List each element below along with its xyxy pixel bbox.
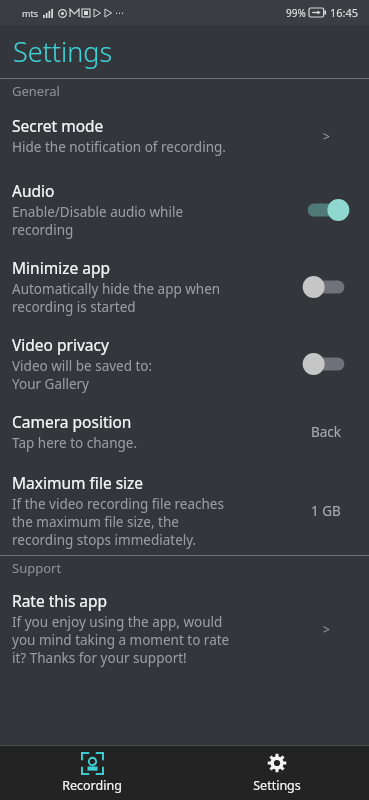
staticText: Rate this app: [12, 590, 108, 611]
button[interactable]: Settings: [184, 746, 369, 800]
staticText: Tap here to change.: [12, 434, 138, 452]
button[interactable]: Maximum file size: [0, 470, 369, 555]
staticText: Support: [12, 559, 62, 577]
staticText: Video privacy: [12, 334, 109, 355]
staticText: Secret mode: [12, 115, 104, 136]
button[interactable]: Toggle off: [303, 276, 349, 298]
staticText: 99%: [286, 6, 306, 20]
staticText: 16:45: [330, 5, 359, 20]
staticText: >: [323, 621, 330, 637]
staticText: Automatically hide the app when recordin…: [12, 280, 221, 316]
button[interactable]: Audio: [0, 174, 369, 251]
button[interactable]: Toggle off: [303, 353, 349, 375]
staticText: mts: [22, 7, 38, 19]
staticText: Enable/Disable audio while recording: [12, 203, 184, 239]
staticText: Maximum file size: [12, 472, 144, 493]
button[interactable]: Minimize app: [0, 251, 369, 328]
button[interactable]: Toggle on: [303, 199, 349, 221]
button[interactable]: Recording: [0, 746, 184, 800]
button[interactable]: Secret mode: [0, 103, 369, 174]
staticText: >: [323, 128, 330, 144]
staticText: Camera position: [12, 411, 132, 432]
staticText: Minimize app: [12, 257, 110, 278]
staticText: Settings: [253, 777, 301, 794]
staticText: If you enjoy using the app, would you mi…: [12, 613, 230, 667]
staticText: 1 GB: [311, 502, 341, 520]
button[interactable]: Rate this app: [0, 580, 369, 673]
staticText: Audio: [12, 180, 55, 201]
button[interactable]: Camera position: [0, 405, 369, 470]
staticText: Recording: [62, 777, 122, 794]
staticText: Settings: [13, 33, 113, 70]
button[interactable]: Video privacy: [0, 328, 369, 405]
staticText: Hide the notification of recording.: [12, 138, 226, 156]
staticText: ⋯: [115, 8, 124, 18]
staticText: If the video recording file reaches the …: [12, 495, 224, 549]
staticText: Video will be saved to: Your Gallery: [12, 357, 153, 393]
staticText: General: [12, 82, 60, 100]
staticText: Back: [311, 423, 342, 441]
